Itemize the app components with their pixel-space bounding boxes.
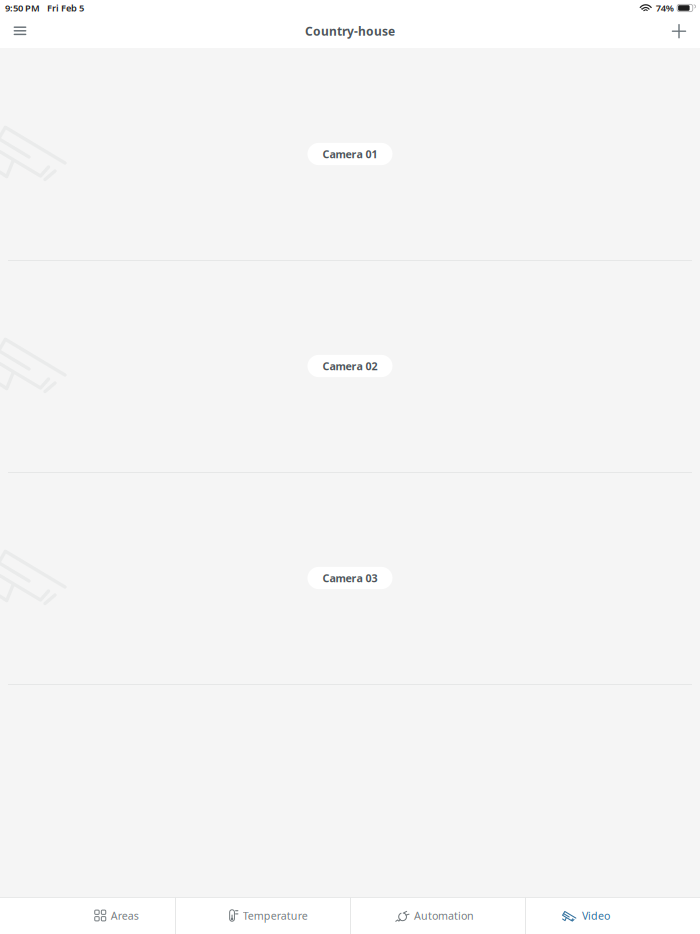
button[interactable]: Areas: [0, 897, 175, 934]
staticText: Video: [582, 908, 610, 923]
staticText: Temperature: [243, 908, 308, 923]
staticText: 9:50 PM: [5, 2, 40, 14]
staticText: Camera 01: [322, 147, 377, 161]
button[interactable]: Menu: [0, 16, 40, 48]
staticText: Fri Feb 5: [47, 2, 84, 14]
staticText: Areas: [111, 908, 139, 923]
staticText: Camera 02: [322, 359, 377, 373]
staticText: Camera 03: [322, 571, 377, 585]
button[interactable]: Add: [658, 16, 700, 48]
staticText: 74%: [656, 2, 674, 14]
staticText: Country-house: [305, 23, 395, 39]
button[interactable]: Video: [525, 897, 700, 934]
staticText: Automation: [414, 908, 474, 923]
button[interactable]: Temperature: [175, 897, 350, 934]
button[interactable]: Automation: [350, 897, 525, 934]
